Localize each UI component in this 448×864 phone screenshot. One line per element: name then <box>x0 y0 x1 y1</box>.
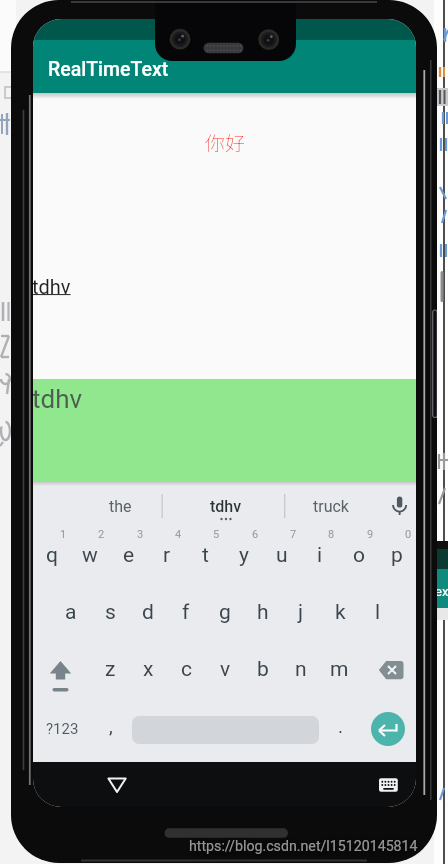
staticText: f <box>182 600 190 625</box>
staticText: 1 <box>60 528 67 541</box>
staticText: b <box>257 657 269 682</box>
staticText: , <box>109 715 113 737</box>
staticText: ?123 <box>46 720 79 738</box>
button[interactable]: tdhv <box>33 379 416 482</box>
staticText: ex <box>435 584 448 599</box>
button[interactable]: p <box>378 530 416 580</box>
button[interactable]: n <box>282 644 320 694</box>
button[interactable]: s <box>91 587 129 637</box>
staticText: 5 <box>213 528 220 541</box>
staticText: i <box>317 543 323 568</box>
button[interactable]: t <box>186 530 224 580</box>
staticText: l <box>375 600 381 625</box>
staticText: a <box>65 600 77 625</box>
button[interactable]: u <box>263 530 301 580</box>
staticText: 3 <box>137 528 144 541</box>
button[interactable]: x <box>129 644 167 694</box>
button[interactable]: m <box>320 644 358 694</box>
staticText: y <box>239 543 249 568</box>
staticText: https://blog.csdn.net/l15120145814 <box>189 838 418 855</box>
staticText: 你好 <box>205 128 245 157</box>
staticText: 2 <box>98 528 105 541</box>
staticText: v <box>220 657 231 682</box>
staticText: z <box>105 657 116 682</box>
staticText: 0 <box>405 528 412 541</box>
staticText: p <box>391 543 403 568</box>
staticText: w <box>82 543 98 568</box>
button[interactable]: g <box>206 587 244 637</box>
button[interactable]: i <box>301 530 339 580</box>
staticText: m <box>330 657 349 682</box>
staticText: o <box>353 543 365 568</box>
staticText: e <box>123 543 135 568</box>
button[interactable]: truck <box>296 492 366 520</box>
button[interactable]: z <box>91 644 129 694</box>
staticText: 6 <box>252 528 259 541</box>
staticText: d <box>142 600 154 625</box>
staticText: . <box>338 715 344 737</box>
button[interactable]: j <box>282 587 320 637</box>
staticText: q <box>46 543 58 568</box>
button[interactable]: , <box>96 704 126 748</box>
button[interactable]: tdhv <box>33 270 112 302</box>
button[interactable]: l <box>359 587 397 637</box>
staticText: 8 <box>328 528 335 541</box>
staticText: 7 <box>290 528 297 541</box>
staticText: u <box>276 543 288 568</box>
button[interactable]: d <box>129 587 167 637</box>
button[interactable]: v <box>206 644 244 694</box>
button[interactable]: r <box>148 530 186 580</box>
button[interactable]: . <box>326 704 356 748</box>
staticText: s <box>105 600 116 625</box>
button[interactable]: w <box>71 530 109 580</box>
staticText: the <box>109 497 132 516</box>
staticText: j <box>298 600 304 625</box>
staticText: t <box>202 543 209 568</box>
button[interactable]: ?123 <box>34 707 90 751</box>
button[interactable]: tdhv <box>191 492 261 520</box>
button[interactable] <box>100 768 134 802</box>
staticText: c <box>181 657 192 682</box>
button[interactable]: e <box>110 530 148 580</box>
button[interactable]: the <box>85 492 155 520</box>
staticText: tdhv <box>210 497 242 516</box>
staticText: 4 <box>175 528 182 541</box>
button[interactable] <box>381 488 416 522</box>
button[interactable]: c <box>167 644 205 694</box>
staticText: r <box>163 543 171 568</box>
staticText: g <box>219 600 231 625</box>
button[interactable] <box>364 647 416 695</box>
staticText: x <box>143 657 154 682</box>
button[interactable] <box>372 771 406 801</box>
staticText: truck <box>313 497 349 516</box>
button[interactable] <box>35 647 87 695</box>
button[interactable]: f <box>167 587 205 637</box>
button[interactable] <box>371 712 405 746</box>
button[interactable]: b <box>244 644 282 694</box>
button[interactable]: k <box>321 587 359 637</box>
button[interactable]: y <box>225 530 263 580</box>
staticText: h <box>257 600 269 625</box>
staticText: RealTimeText <box>48 58 169 81</box>
staticText: tdhv <box>33 275 71 298</box>
button[interactable]: a <box>52 587 90 637</box>
staticText: k <box>335 600 346 625</box>
button[interactable]: q <box>33 530 71 580</box>
button[interactable]: h <box>244 587 282 637</box>
staticText: 9 <box>367 528 374 541</box>
button[interactable]: o <box>340 530 378 580</box>
staticText: tdhv <box>33 384 83 414</box>
staticText: n <box>295 657 307 682</box>
